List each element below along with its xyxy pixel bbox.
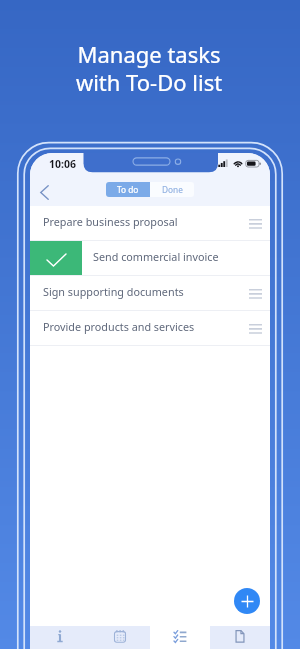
staticText: Send commercial invoice bbox=[93, 249, 240, 264]
staticText: Manage tasks with To-Do list bbox=[0, 39, 299, 98]
button[interactable]: Reorder bbox=[240, 311, 270, 346]
staticText: Sign supporting documents bbox=[43, 284, 240, 299]
button[interactable]: Prepare business proposal bbox=[30, 206, 270, 241]
button[interactable]: To do bbox=[106, 182, 150, 197]
staticText: Prepare business proposal bbox=[43, 214, 240, 229]
staticText: Done bbox=[162, 184, 183, 195]
button[interactable]: Back bbox=[31, 179, 57, 205]
button[interactable]: Add task bbox=[234, 588, 260, 614]
button[interactable]: Calendar bbox=[90, 626, 150, 649]
staticText: 10:06 bbox=[49, 157, 76, 171]
button[interactable]: Send commercial invoice bbox=[30, 241, 270, 276]
staticText: Provide products and services bbox=[43, 319, 240, 334]
button[interactable]: Done bbox=[150, 182, 194, 197]
button[interactable]: Reorder bbox=[240, 276, 270, 311]
button[interactable]: Info bbox=[30, 626, 90, 649]
button[interactable]: Sign supporting documents bbox=[30, 276, 270, 311]
button[interactable]: Tasks bbox=[150, 626, 210, 649]
staticText: To do bbox=[117, 184, 139, 195]
button[interactable]: Reorder bbox=[240, 206, 270, 241]
button[interactable]: Documents bbox=[210, 626, 270, 649]
button[interactable]: Provide products and services bbox=[30, 311, 270, 346]
